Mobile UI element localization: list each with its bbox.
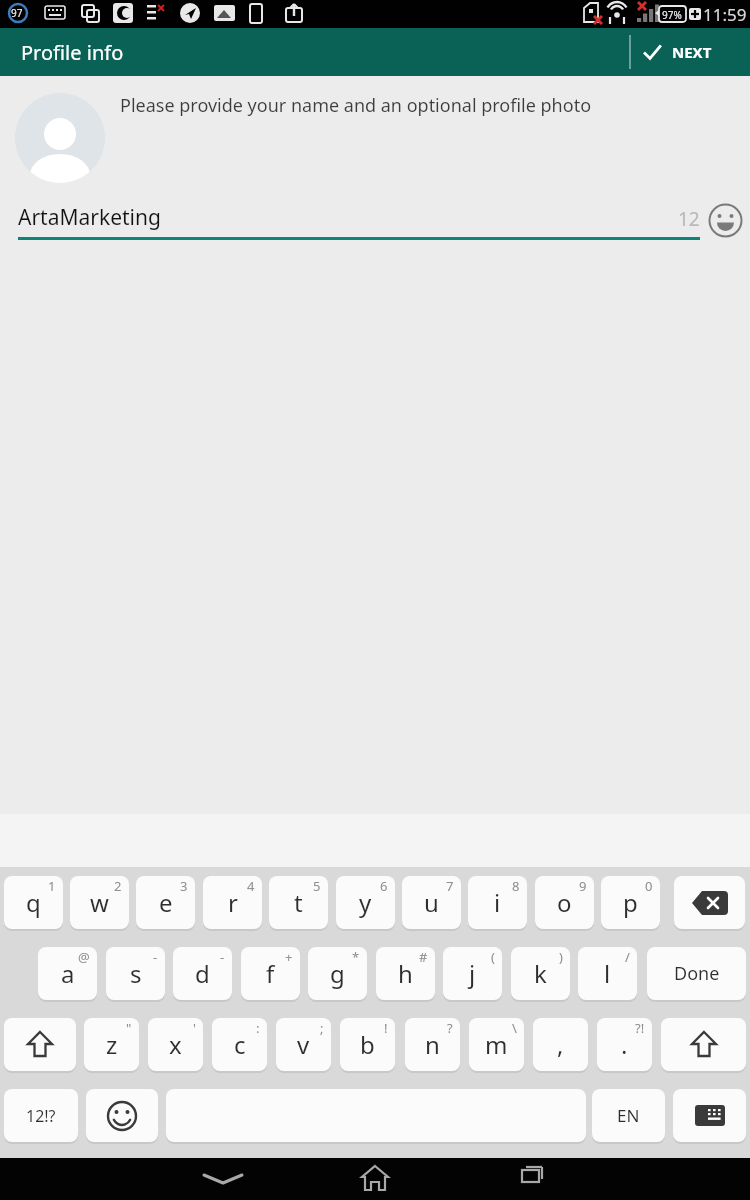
button[interactable]: p (601, 876, 660, 929)
button[interactable]: h (376, 947, 435, 1000)
staticText: ( (491, 948, 495, 966)
staticText: f (266, 957, 275, 990)
staticText: - (153, 948, 158, 966)
staticText: d (195, 957, 210, 990)
staticText: u (424, 886, 439, 919)
staticText: h (398, 957, 413, 990)
staticText: v (297, 1028, 310, 1061)
button[interactable]: ArtaMarketing (18, 192, 700, 240)
staticText: EN (617, 1104, 640, 1127)
staticText: ?! (635, 1019, 645, 1037)
button[interactable]: v (276, 1018, 331, 1071)
staticText: 97% (662, 8, 682, 22)
button[interactable]: n (405, 1018, 460, 1071)
button[interactable] (15, 93, 105, 183)
staticText: r (228, 886, 238, 919)
staticText: 11:59 (703, 3, 747, 26)
staticText: - (220, 948, 225, 966)
staticText: k (534, 957, 547, 990)
staticText: Please provide your name and an optional… (120, 93, 592, 118)
staticText: 7 (446, 877, 454, 895)
button[interactable]: q (4, 876, 63, 929)
staticText: 8 (512, 877, 520, 895)
staticText: s (130, 957, 142, 990)
button[interactable]: b (340, 1018, 395, 1071)
staticText: j (469, 957, 476, 990)
staticText: 0 (645, 877, 653, 895)
staticText: o (557, 886, 572, 919)
staticText: p (623, 886, 638, 919)
staticText: 3 (180, 877, 188, 895)
button[interactable]: w (70, 876, 129, 929)
staticText: ) (559, 948, 563, 966)
staticText: NEXT (672, 42, 712, 62)
staticText: 12!? (26, 1105, 56, 1127)
staticText: 12 (678, 206, 700, 232)
staticText: ' (193, 1019, 196, 1037)
button[interactable]: EN (592, 1089, 665, 1142)
button[interactable]: t (269, 876, 328, 929)
button[interactable] (673, 1089, 746, 1142)
button[interactable] (345, 1158, 405, 1200)
button[interactable]: m (469, 1018, 524, 1071)
staticText: a (61, 957, 75, 990)
button[interactable]: l (578, 947, 637, 1000)
staticText: ; (320, 1019, 324, 1037)
button[interactable]: y (336, 876, 395, 929)
staticText: w (90, 886, 109, 919)
staticText: 4 (247, 877, 255, 895)
staticText: l (604, 957, 611, 990)
button[interactable] (4, 1018, 76, 1071)
staticText: i (494, 886, 501, 919)
staticText: c (234, 1028, 246, 1061)
button[interactable] (674, 876, 745, 929)
button[interactable]: s (106, 947, 165, 1000)
button[interactable]: k (511, 947, 570, 1000)
button[interactable]: NEXT (643, 42, 712, 62)
staticText: Done (674, 961, 720, 986)
button[interactable]: z (84, 1018, 139, 1071)
staticText: : (256, 1019, 260, 1037)
staticText: b (360, 1028, 375, 1061)
staticText: g (330, 957, 345, 990)
button[interactable]: f (241, 947, 300, 1000)
staticText: q (26, 886, 41, 919)
button[interactable] (497, 1158, 557, 1200)
staticText: / (625, 948, 630, 966)
button[interactable]: Done (647, 947, 746, 1000)
button[interactable]: , (533, 1018, 588, 1071)
staticText: + (285, 948, 293, 966)
staticText: \ (512, 1019, 517, 1037)
staticText: , (557, 1028, 564, 1061)
staticText: e (159, 886, 173, 919)
button[interactable]: c (212, 1018, 267, 1071)
button[interactable]: o (535, 876, 594, 929)
button[interactable]: a (38, 947, 97, 1000)
button[interactable] (86, 1089, 158, 1142)
staticText: 97 (11, 6, 23, 20)
button[interactable]: u (402, 876, 461, 929)
button[interactable]: 12!? (4, 1089, 78, 1142)
staticText: y (359, 886, 372, 919)
button[interactable]: j (443, 947, 502, 1000)
button[interactable]: g (308, 947, 367, 1000)
button[interactable] (193, 1158, 253, 1200)
staticText: ? (447, 1019, 453, 1037)
staticText: 5 (313, 877, 321, 895)
button[interactable]: x (148, 1018, 203, 1071)
staticText: ! (384, 1019, 388, 1037)
staticText: . (621, 1028, 628, 1061)
staticText: ArtaMarketing (18, 203, 161, 232)
button[interactable]: . (597, 1018, 652, 1071)
button[interactable] (661, 1018, 746, 1071)
staticText: x (169, 1028, 182, 1061)
button[interactable]: i (468, 876, 527, 929)
button[interactable]: r (203, 876, 262, 929)
button[interactable] (707, 202, 744, 239)
button[interactable]: d (173, 947, 232, 1000)
staticText: " (126, 1019, 132, 1037)
staticText: 9 (579, 877, 587, 895)
staticText: n (425, 1028, 440, 1061)
button[interactable]: e (136, 876, 195, 929)
